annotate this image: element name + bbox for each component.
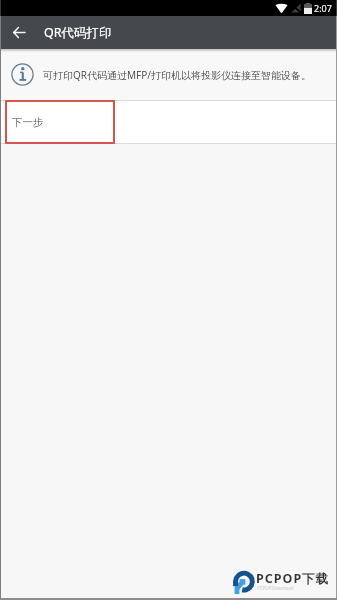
- staticText: QR代码打印: [44, 24, 112, 41]
- staticText: PCPOP下载: [256, 570, 330, 587]
- staticText: 2:07: [314, 2, 332, 14]
- button[interactable]: Back: [0, 16, 37, 49]
- staticText: PCPOP.Download: [257, 585, 294, 591]
- staticText: 下一步: [12, 116, 44, 129]
- button[interactable]: 下一步: [0, 101, 337, 143]
- staticText: 可打印QR代码通过MFP/打印机以将投影仪连接至智能设备。: [43, 68, 312, 82]
